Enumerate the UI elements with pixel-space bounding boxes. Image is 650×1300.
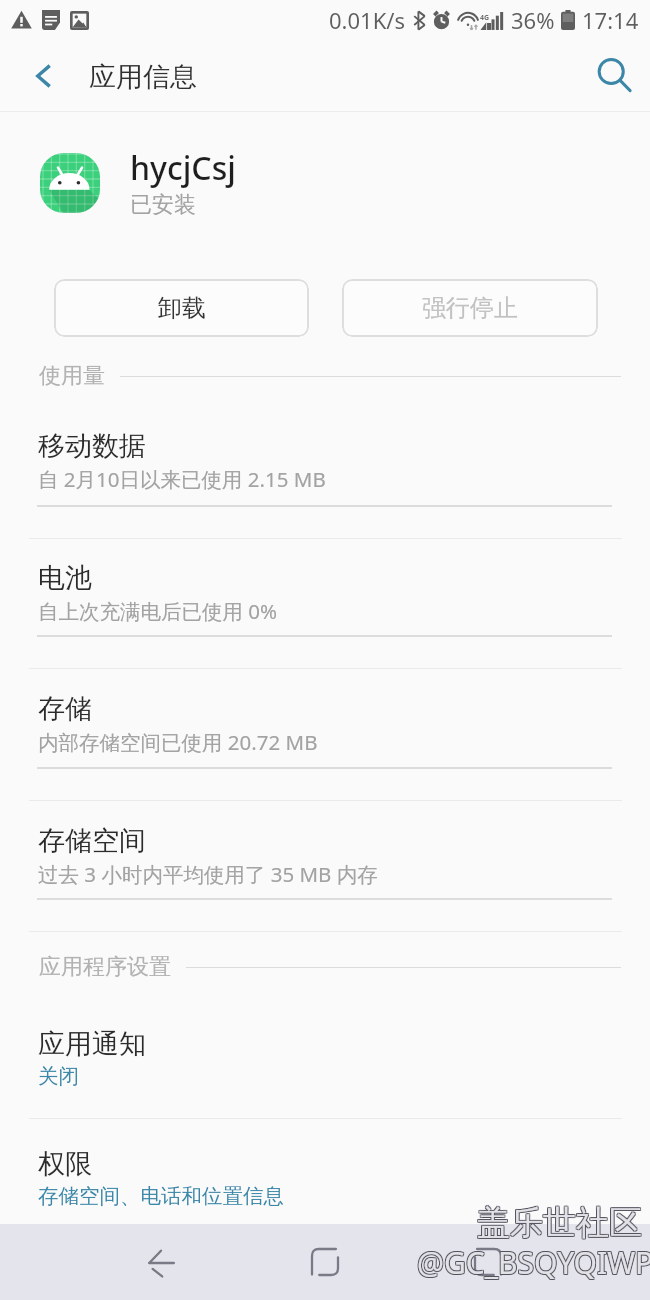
button[interactable] <box>0 1136 650 1226</box>
staticText: 自上次充满电后已使用 0% <box>38 597 278 625</box>
button[interactable] <box>0 550 650 635</box>
staticText: 存储 <box>38 692 92 726</box>
staticText: @GC_BSQYQIWP <box>418 1243 650 1284</box>
staticText: @GC_BSQYQIWP <box>417 1242 650 1283</box>
staticText: 盖乐世社区 <box>476 1203 641 1245</box>
staticText: 盖乐世社区 <box>477 1202 642 1244</box>
staticText: @GC_BSQYQIWP <box>416 1242 650 1283</box>
staticText: 使用量 <box>39 362 105 390</box>
staticText: 强行停止 <box>422 293 518 323</box>
staticText: @GC_BSQYQIWP <box>417 1243 650 1284</box>
staticText: 36% <box>511 5 555 35</box>
staticText: @GC_BSQYQIWP <box>416 1241 650 1282</box>
button[interactable]: 卸载 <box>54 279 309 337</box>
button[interactable] <box>0 813 650 898</box>
staticText: 4G <box>480 13 490 23</box>
button[interactable]: Back <box>125 1227 197 1299</box>
staticText: 应用程序设置 <box>39 953 171 981</box>
staticText: 自 2月10日以来已使用 2.15 MB <box>38 465 326 493</box>
staticText: 盖乐世社区 <box>478 1201 643 1243</box>
staticText: 应用通知 <box>38 1027 146 1061</box>
button[interactable] <box>0 1016 650 1106</box>
staticText: 17:14 <box>582 5 639 35</box>
staticText: 内部存储空间已使用 20.72 MB <box>38 728 318 756</box>
button[interactable]: 强行停止 <box>342 279 598 337</box>
button[interactable] <box>0 681 650 767</box>
staticText: 电池 <box>38 561 92 595</box>
button[interactable]: Home <box>289 1226 361 1298</box>
staticText: 存储空间 <box>38 824 146 858</box>
button[interactable]: Back <box>16 48 72 104</box>
staticText: 存储空间、电话和位置信息 <box>38 1183 284 1209</box>
staticText: 盖乐世社区 <box>477 1203 642 1245</box>
staticText: 过去 3 小时内平均使用了 35 MB 内存 <box>38 860 378 888</box>
staticText: 应用信息 <box>89 60 197 94</box>
staticText: 卸载 <box>158 293 206 323</box>
staticText: @GC_BSQYQIWP <box>416 1243 650 1284</box>
staticText: 已安装 <box>130 191 196 219</box>
staticText: 0.01K/s <box>329 5 405 35</box>
staticText: hycjCsj <box>130 146 236 190</box>
button[interactable]: Search <box>584 45 646 107</box>
button[interactable] <box>0 418 650 505</box>
staticText: @GC_BSQYQIWP <box>417 1241 650 1282</box>
staticText: @GC_BSQYQIWP <box>418 1241 650 1282</box>
staticText: 盖乐世社区 <box>476 1202 641 1244</box>
staticText: 盖乐世社区 <box>478 1203 643 1245</box>
staticText: 关闭 <box>38 1063 79 1089</box>
staticText: @GC_BSQYQIWP <box>418 1242 650 1283</box>
staticText: 盖乐世社区 <box>476 1201 641 1243</box>
staticText: 盖乐世社区 <box>478 1202 643 1244</box>
staticText: 移动数据 <box>38 429 146 463</box>
button[interactable]: Recents <box>452 1226 524 1298</box>
staticText: 权限 <box>38 1147 92 1181</box>
staticText: 盖乐世社区 <box>477 1201 642 1243</box>
